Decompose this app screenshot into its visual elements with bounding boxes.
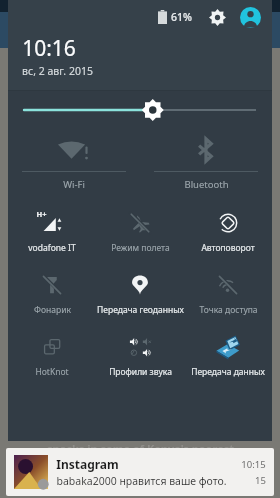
button[interactable]: Передача данных xyxy=(184,330,272,378)
staticText: HotKnot xyxy=(35,366,69,378)
button[interactable]: Bluetooth xyxy=(140,129,272,196)
button[interactable]: Автоповорот xyxy=(184,206,272,254)
staticText: babaka2000 нравится ваше фото. xyxy=(56,474,227,488)
staticText: 10:16 xyxy=(22,34,76,63)
button[interactable]: HotKnot xyxy=(8,330,96,378)
staticText: Bluetooth xyxy=(184,178,229,191)
staticText: Режим полета xyxy=(111,242,170,254)
staticText: Передача геоданных xyxy=(97,304,184,316)
staticText: 61% xyxy=(171,10,192,24)
button[interactable]: Settings xyxy=(206,6,228,28)
button[interactable]: Wi-Fi xyxy=(8,129,140,196)
staticText: H+ xyxy=(36,209,47,219)
button[interactable]: Точка доступа xyxy=(184,268,272,316)
staticText: 15 xyxy=(255,474,266,487)
staticText: Передача данных xyxy=(191,366,265,378)
staticText: Точка доступа xyxy=(199,304,258,316)
staticText: snacks in some of Kenya's poorest xyxy=(47,441,234,456)
button[interactable]: H+ xyxy=(8,206,96,254)
staticText: Автоповорот xyxy=(201,242,255,254)
button[interactable]: Instagram xyxy=(6,448,274,496)
button[interactable]: Фонарик xyxy=(8,268,96,316)
staticText: вс, 2 авг. 2015 xyxy=(22,64,93,78)
staticText: Профили звука xyxy=(109,366,172,378)
button[interactable]: User profile xyxy=(238,5,262,29)
staticText: Фонарик xyxy=(34,304,71,316)
other: Battery xyxy=(158,10,167,24)
button[interactable]: Передача геоданных xyxy=(96,268,184,316)
staticText: Wi-Fi xyxy=(63,178,85,191)
staticText: Instagram xyxy=(56,456,119,472)
button[interactable]: Brightness xyxy=(24,95,256,125)
button[interactable]: Режим полета xyxy=(96,206,184,254)
button[interactable]: Профили звука xyxy=(96,330,184,378)
staticText: 10:15 xyxy=(241,458,266,471)
staticText: vodafone IT xyxy=(28,242,76,254)
